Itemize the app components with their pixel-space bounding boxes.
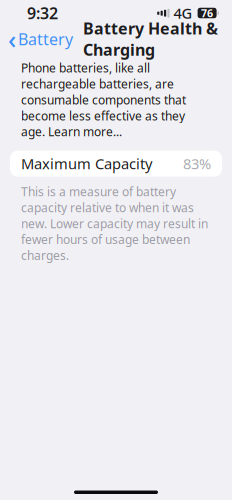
staticText: 76	[201, 6, 213, 20]
staticText: This is a measure of battery capacity re…	[21, 184, 208, 263]
button[interactable]: ‹	[0, 18, 73, 60]
staticText: ‹	[8, 22, 16, 56]
staticText: Maximum Capacity	[21, 154, 152, 173]
staticText: Battery	[18, 28, 73, 50]
staticText: Phone batteries, like all rechargeable b…	[21, 60, 186, 140]
staticText: 9:32	[27, 2, 58, 24]
staticText: 4G	[174, 3, 193, 23]
button[interactable]: Maximum Capacity	[10, 151, 222, 177]
staticText: Battery Health & Charging	[83, 18, 218, 60]
staticText: 83%	[183, 154, 211, 173]
staticText: To reduce battery aging, iPhone learns f…	[21, 431, 205, 500]
